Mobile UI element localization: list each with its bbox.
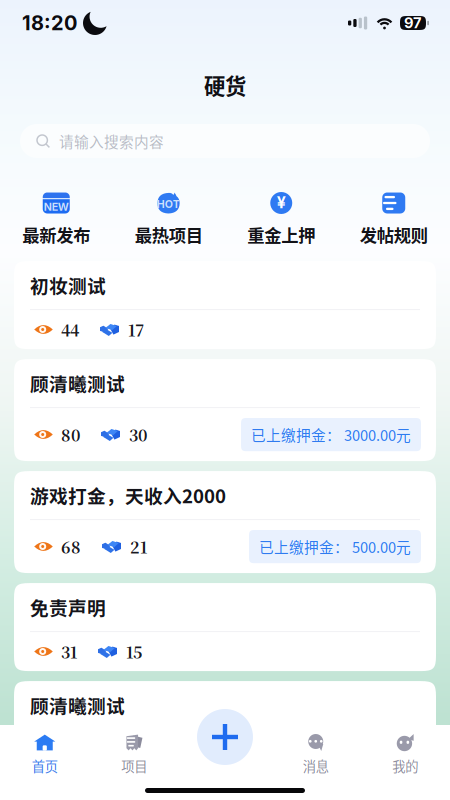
staticText: 顾清曦测试: [30, 692, 125, 719]
staticText: 顾清曦测试: [30, 370, 125, 397]
staticText: 17: [128, 318, 144, 341]
button[interactable]: 免责声明: [14, 583, 436, 671]
staticText: 80: [61, 423, 80, 446]
button[interactable]: 顾清曦测试: [14, 359, 436, 461]
button[interactable]: 消息: [271, 734, 360, 775]
staticText: 21: [130, 535, 147, 558]
staticText: 最热项目: [135, 222, 203, 247]
staticText: HOT: [157, 198, 180, 211]
staticText: 项目: [121, 756, 147, 775]
staticText: 44: [61, 318, 79, 341]
staticText: 我的: [392, 756, 418, 775]
staticText: 18:20: [22, 11, 77, 35]
staticText: 发帖规则: [360, 222, 428, 247]
staticText: 最新发布: [22, 222, 90, 247]
button[interactable]: 顾清曦测试: [14, 681, 436, 769]
staticText: 游戏打金，天收入2000: [30, 482, 226, 509]
button[interactable]: 初妆测试: [14, 261, 436, 349]
staticText: 请输入搜索内容: [59, 130, 164, 152]
staticText: 消息: [303, 756, 329, 775]
staticText: 97: [404, 14, 422, 32]
staticText: 已上缴押金： 3000.00元: [251, 424, 411, 445]
staticText: 11: [130, 738, 144, 761]
staticText: 68: [61, 535, 81, 558]
button[interactable]: ¥: [225, 192, 337, 247]
staticText: 初妆测试: [30, 272, 106, 299]
staticText: 31: [61, 640, 77, 663]
staticText: 已上缴押金： 500.00元: [259, 536, 411, 557]
button[interactable]: 首页: [0, 734, 89, 775]
button[interactable]: 游戏打金，天收入2000: [14, 471, 436, 573]
staticText: 30: [129, 423, 147, 446]
staticText: 免责声明: [30, 594, 106, 621]
staticText: 15: [126, 640, 143, 663]
staticText: NEW: [44, 200, 69, 213]
button[interactable]: HOT: [112, 192, 225, 247]
button[interactable]: NEW: [0, 192, 112, 247]
staticText: 重金上押: [247, 222, 315, 247]
button[interactable]: 发帖规则: [337, 192, 450, 247]
button[interactable]: 发布: [197, 709, 253, 765]
button[interactable]: 我的: [360, 734, 450, 775]
staticText: ¥: [277, 193, 286, 212]
staticText: 硬货: [204, 70, 246, 100]
staticText: 首页: [32, 756, 58, 775]
button[interactable]: 项目: [89, 734, 179, 775]
